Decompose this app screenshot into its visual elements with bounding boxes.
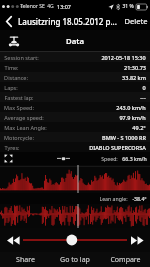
- button[interactable]: Compare: [100, 252, 150, 267]
- staticText: Lausitzring 18.05.2012 p...: [18, 16, 117, 27]
- button[interactable]: Fastest lap:: [0, 92, 150, 102]
- button[interactable]: Laps:: [0, 82, 150, 92]
- button[interactable]: Back: [0, 12, 18, 30]
- button[interactable]: Go to lap: [50, 252, 100, 267]
- staticText: Session start:: [4, 54, 39, 61]
- button[interactable]: Delete: [124, 16, 148, 26]
- staticText: 97.9 km/h: [119, 114, 146, 121]
- staticText: 0: [142, 84, 146, 91]
- staticText: 243.0 km/h: [116, 104, 146, 111]
- button[interactable]: Share: [0, 252, 50, 267]
- button[interactable]: Session start:: [0, 52, 150, 62]
- button[interactable]: Time:: [0, 62, 150, 72]
- staticText: 13:07: [57, 3, 71, 10]
- button[interactable]: Fullscreen: [3, 153, 14, 164]
- staticText: Fastest lap:: [4, 94, 34, 101]
- staticText: Max Speed:: [4, 104, 34, 111]
- button[interactable]: Max Lean Angle:: [0, 122, 150, 132]
- button[interactable]: Distance:: [0, 72, 150, 82]
- staticText: 4G: [47, 3, 54, 10]
- staticText: 33.82 km: [122, 74, 146, 81]
- staticText: Telenor SE: [20, 3, 45, 10]
- staticText: Compare: [110, 255, 141, 265]
- staticText: Distance:: [4, 74, 28, 81]
- staticText: Time:: [4, 64, 19, 71]
- staticText: 66.3 km/h: [122, 155, 147, 162]
- staticText: 49.2°: [132, 124, 146, 131]
- button[interactable]: Timeline scrubber: [22, 232, 128, 248]
- staticText: 21:30.73: [124, 64, 146, 71]
- staticText: Speed:: [101, 155, 118, 162]
- staticText: Max Lean Angle:: [4, 124, 47, 131]
- button[interactable]: Tyres:: [0, 142, 150, 152]
- button[interactable]: [0, 204, 150, 228]
- staticText: Tyres:: [4, 144, 20, 151]
- button[interactable]: Previous lap: [4, 231, 22, 249]
- button[interactable]: Average speed:: [0, 112, 150, 122]
- button[interactable]: Next lap: [128, 231, 146, 249]
- button[interactable]: Motorcycle profile: [6, 33, 22, 49]
- staticText: BMW - S 1000 RR: [102, 134, 146, 141]
- staticText: Share: [16, 255, 35, 265]
- staticText: Motorcycle:: [4, 134, 34, 141]
- staticText: 2012-05-18 15:30: [101, 54, 146, 61]
- staticText: Laps:: [4, 84, 18, 91]
- staticText: Lean angle:: [99, 195, 128, 202]
- button[interactable]: [0, 165, 150, 193]
- staticText: -38.4°: [132, 195, 147, 202]
- staticText: 31 %: [122, 3, 134, 10]
- button[interactable]: Zoom to fit: [56, 155, 70, 163]
- staticText: Average speed:: [4, 114, 44, 121]
- staticText: Delete: [124, 16, 148, 26]
- staticText: Go to lap: [60, 255, 90, 265]
- staticText: Data: [66, 36, 84, 47]
- button[interactable]: Max Speed:: [0, 102, 150, 112]
- button[interactable]: Motorcycle:: [0, 132, 150, 142]
- staticText: DIABLO SUPERCORSA: [89, 144, 146, 151]
- staticText: ---: [140, 94, 146, 101]
